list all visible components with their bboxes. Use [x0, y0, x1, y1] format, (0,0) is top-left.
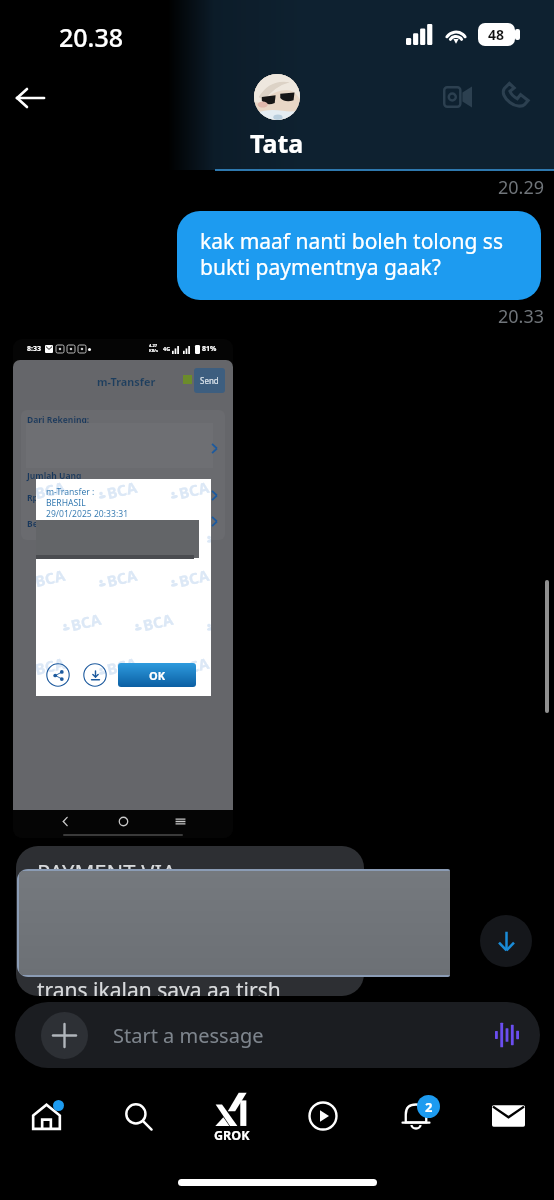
- staticText: 20.38: [59, 20, 124, 54]
- button[interactable]: Video call: [433, 76, 481, 118]
- staticText: BCA: [69, 609, 103, 635]
- staticText: BCA: [36, 565, 67, 591]
- button[interactable]: Scroll to bottom: [480, 915, 532, 967]
- staticText: Rp: [27, 492, 38, 504]
- staticText: 4.27: [149, 343, 157, 348]
- button[interactable]: OK: [118, 663, 196, 687]
- staticText: BCA: [36, 479, 67, 503]
- staticText: BCA: [177, 653, 211, 679]
- button[interactable]: 8:33: [13, 339, 233, 838]
- staticText: 8:33: [27, 344, 41, 354]
- staticText: Start a message: [113, 1022, 264, 1049]
- staticText: OK: [149, 668, 166, 683]
- button[interactable]: Back: [4, 72, 56, 124]
- staticText: 2: [425, 1098, 433, 1116]
- staticText: 20.33: [498, 304, 545, 329]
- staticText: Jumlah Uang: [27, 470, 82, 482]
- staticText: 29/01/2025 20:33:31: [46, 508, 129, 520]
- button[interactable]: Messages: [472, 1084, 544, 1148]
- staticText: kak maaf nanti boleh tolong ss bukti pay…: [200, 227, 527, 282]
- button[interactable]: Share: [46, 663, 70, 687]
- button[interactable]: Tata: [250, 74, 304, 160]
- staticText: m-Transfer :: [46, 486, 95, 498]
- staticText: BCA: [177, 565, 211, 591]
- button[interactable]: Download: [83, 663, 107, 687]
- button[interactable]: Home: [10, 1084, 82, 1148]
- staticText: Dari Rekening:: [27, 414, 90, 426]
- staticText: Tata: [250, 126, 304, 160]
- staticText: 81%: [202, 344, 217, 354]
- staticText: BCA: [36, 653, 67, 679]
- button[interactable]: Voice message: [484, 1012, 530, 1058]
- button[interactable]: PAYMENT VIA: [16, 846, 364, 996]
- staticText: BCA: [105, 653, 139, 679]
- button[interactable]: Video: [287, 1084, 359, 1148]
- staticText: KB/s: [149, 348, 158, 353]
- button[interactable]: Send: [194, 368, 225, 393]
- button[interactable]: Add media: [41, 1012, 88, 1059]
- staticText: Be: [27, 518, 38, 530]
- staticText: PAYMENT VIA: [37, 857, 176, 887]
- button[interactable]: Search: [102, 1084, 174, 1148]
- staticText: 48: [488, 25, 505, 44]
- staticText: 20.29: [498, 175, 545, 200]
- button[interactable]: Call: [491, 70, 539, 118]
- staticText: 4G: [163, 345, 171, 352]
- staticText: trans ikalan saya aa tirsh: [37, 976, 281, 996]
- staticText: GROK: [214, 1127, 250, 1144]
- button[interactable]: Notifications: [380, 1084, 452, 1148]
- staticText: BCA: [105, 479, 139, 503]
- staticText: Send: [200, 375, 219, 386]
- staticText: BCA: [105, 565, 139, 591]
- staticText: BCA: [177, 479, 211, 503]
- staticText: m-Transfer: [97, 374, 156, 389]
- button[interactable]: Grok: [195, 1084, 267, 1148]
- staticText: BCA: [141, 609, 175, 635]
- button[interactable]: kak maaf nanti boleh tolong ss bukti pay…: [177, 211, 541, 300]
- button[interactable]: Add media: [15, 1002, 540, 1068]
- staticText: BERHASIL: [46, 497, 86, 509]
